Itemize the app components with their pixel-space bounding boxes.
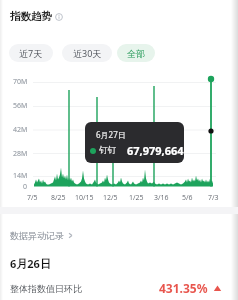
staticText: 56M xyxy=(13,101,28,111)
staticText: 近7天 xyxy=(19,47,43,59)
staticText: 全部 xyxy=(127,48,145,59)
button[interactable]: 6月27日 xyxy=(85,122,184,163)
staticText: 1/25 xyxy=(129,193,144,203)
staticText: 6月26日 xyxy=(10,256,51,271)
staticText: 3/16 xyxy=(154,193,169,203)
staticText: 7/5 xyxy=(27,193,38,203)
staticText: 8/25 xyxy=(51,193,66,203)
button[interactable]: 近7天 xyxy=(9,44,53,62)
button[interactable]: 指数趋势 xyxy=(10,10,63,23)
staticText: 钉钉 xyxy=(99,145,116,156)
button[interactable]: 全部 xyxy=(117,44,155,62)
staticText: 数据异动记录 xyxy=(10,230,64,241)
staticText: 整体指数值日环比 xyxy=(10,283,82,294)
staticText: 28M xyxy=(13,149,28,159)
staticText: 6月27日 xyxy=(96,129,126,140)
button[interactable]: 近30天 xyxy=(62,44,112,62)
staticText: 指数趋势 xyxy=(10,10,52,23)
staticText: 42M xyxy=(13,125,28,135)
staticText: 431.35% xyxy=(159,280,208,296)
staticText: 10/15 xyxy=(75,193,94,203)
staticText: 12/5 xyxy=(103,193,118,203)
button[interactable]: 整体指数值日环比 xyxy=(0,280,238,296)
staticText: 0 xyxy=(23,182,28,192)
staticText: 5/6 xyxy=(182,193,193,203)
staticText: 7/3 xyxy=(208,193,219,203)
staticText: 近30天 xyxy=(73,47,102,59)
staticText: 14M xyxy=(13,171,28,181)
button[interactable]: 数据异动记录 xyxy=(10,230,74,241)
staticText: 67,979,664 xyxy=(127,143,184,158)
staticText: 70M xyxy=(13,77,28,87)
